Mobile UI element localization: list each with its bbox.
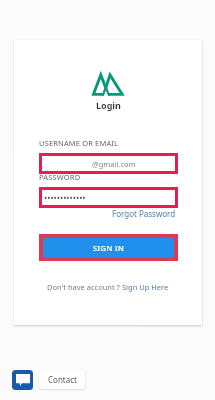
staticText: USERNAME OR EMAIL [39, 138, 119, 148]
staticText: PASSWORD [39, 172, 81, 182]
button[interactable]: ••••••••••••• [42, 190, 175, 205]
staticText: @gmail.com [92, 159, 136, 169]
staticText: Contact [48, 374, 77, 385]
staticText: SIGN IN [93, 243, 125, 253]
button[interactable]: @gmail.com [42, 156, 175, 171]
staticText: Login [96, 99, 121, 111]
button[interactable]: Forgot Password [112, 208, 178, 219]
button[interactable]: Contact [39, 370, 85, 389]
staticText: ••••••••••••• [44, 192, 86, 204]
button[interactable]: SIGN IN [43, 238, 174, 258]
button[interactable]: Sign Up Here [122, 282, 169, 292]
staticText: Don't have account ? [47, 282, 122, 292]
button[interactable]: Open chat [12, 370, 33, 390]
